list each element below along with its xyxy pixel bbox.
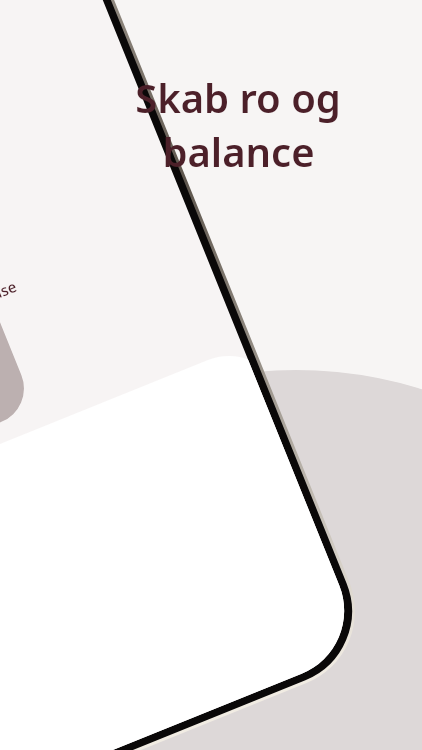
staticText: balance: [162, 124, 315, 178]
button[interactable]: Pause: [0, 275, 20, 310]
button[interactable]: Skab ro og: [57, 70, 419, 178]
staticText: Pause: [0, 275, 20, 310]
staticText: Skab ro og: [135, 70, 341, 124]
